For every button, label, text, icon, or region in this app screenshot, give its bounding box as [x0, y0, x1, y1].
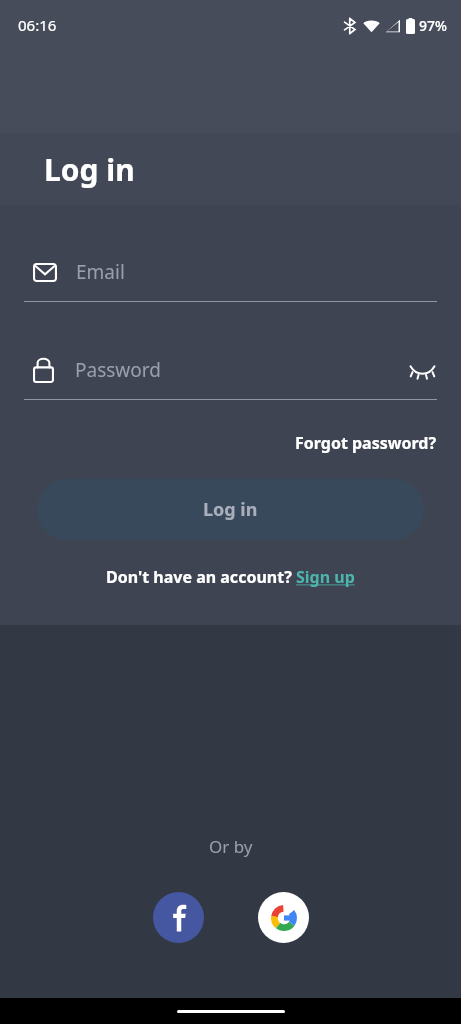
button[interactable]: Show password	[407, 355, 437, 385]
button[interactable]: Don't have an account?	[106, 566, 355, 588]
staticText: Don't have an account?	[106, 566, 296, 588]
staticText: 97%	[419, 16, 447, 35]
staticText: Log in	[203, 497, 258, 522]
button[interactable]: Password	[0, 352, 461, 400]
button[interactable]: Sign in with Facebook	[153, 892, 204, 943]
staticText: Forgot password?	[295, 432, 437, 454]
button[interactable]: Email	[0, 254, 461, 302]
button[interactable]: Forgot password?	[295, 428, 461, 458]
staticText: 06:16	[18, 15, 57, 35]
staticText: Log in	[44, 149, 135, 190]
staticText: Sign up	[296, 566, 355, 588]
button[interactable]: Log in	[37, 479, 424, 540]
staticText: Password	[75, 357, 407, 383]
staticText: Or by	[209, 835, 253, 858]
staticText: Email	[76, 259, 125, 285]
button[interactable]: Sign in with Google	[258, 892, 309, 943]
